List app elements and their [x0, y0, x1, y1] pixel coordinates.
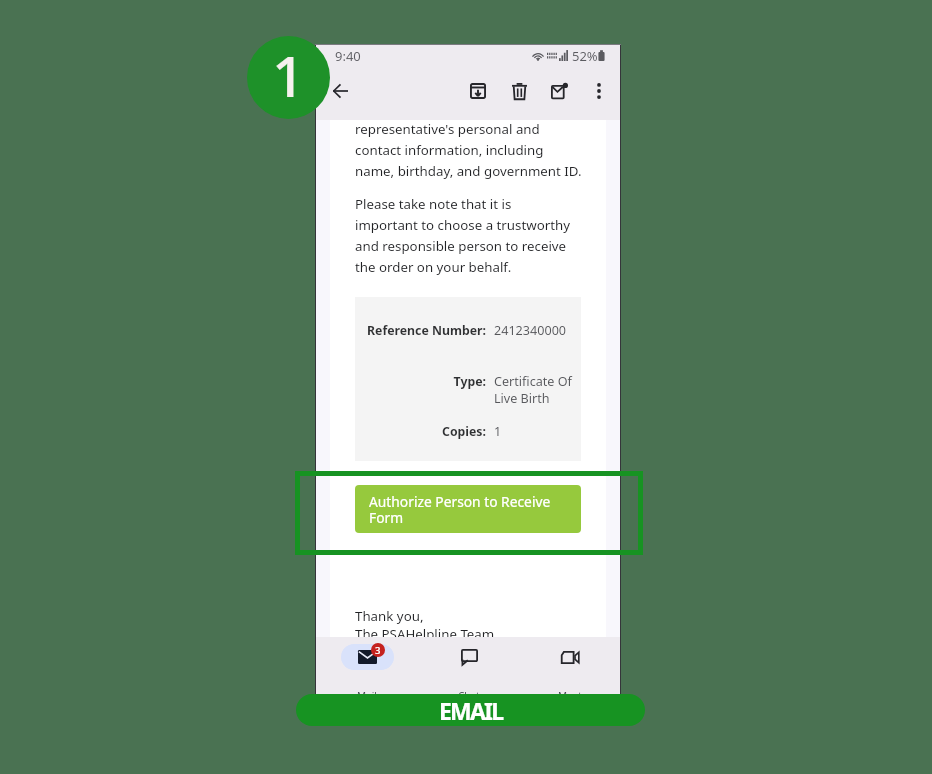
staticText: The PSAHelpline Team	[355, 625, 495, 637]
staticText: Please take note that it is important to…	[355, 195, 571, 276]
staticText: Reference Number:	[366, 322, 486, 339]
staticText: 1	[494, 423, 502, 440]
button[interactable]: More options	[584, 76, 614, 106]
button[interactable]: Mark as unread	[543, 75, 575, 107]
button[interactable]: Chat	[418, 637, 519, 695]
button[interactable]: EMAIL	[296, 694, 645, 726]
staticText: 52%	[572, 47, 598, 65]
staticText: Copies:	[442, 423, 486, 440]
button[interactable]: Delete	[503, 75, 535, 107]
staticText: Mail	[357, 689, 377, 703]
button[interactable]: Authorize Person to Receive Form	[355, 485, 581, 533]
staticText: Type:	[453, 373, 486, 390]
staticText: 1	[272, 36, 305, 114]
button[interactable]: Back	[324, 75, 356, 107]
staticText: 2412340000	[494, 322, 567, 339]
staticText: EMAIL	[439, 695, 503, 726]
staticText: representative's personal and contact in…	[355, 120, 581, 180]
staticText: 9:40	[335, 47, 361, 65]
button[interactable]: Mail	[316, 637, 418, 695]
staticText: Thank you,	[355, 607, 424, 625]
staticText: Meet	[558, 689, 582, 703]
other: Mail	[341, 644, 394, 670]
staticText: Certificate Of Live Birth	[494, 373, 572, 407]
button[interactable]: Meet	[519, 637, 620, 695]
staticText: Chat	[458, 689, 480, 703]
staticText: 3	[375, 644, 381, 657]
button[interactable]: Archive	[462, 75, 494, 107]
staticText: Authorize Person to Receive Form	[369, 492, 551, 527]
